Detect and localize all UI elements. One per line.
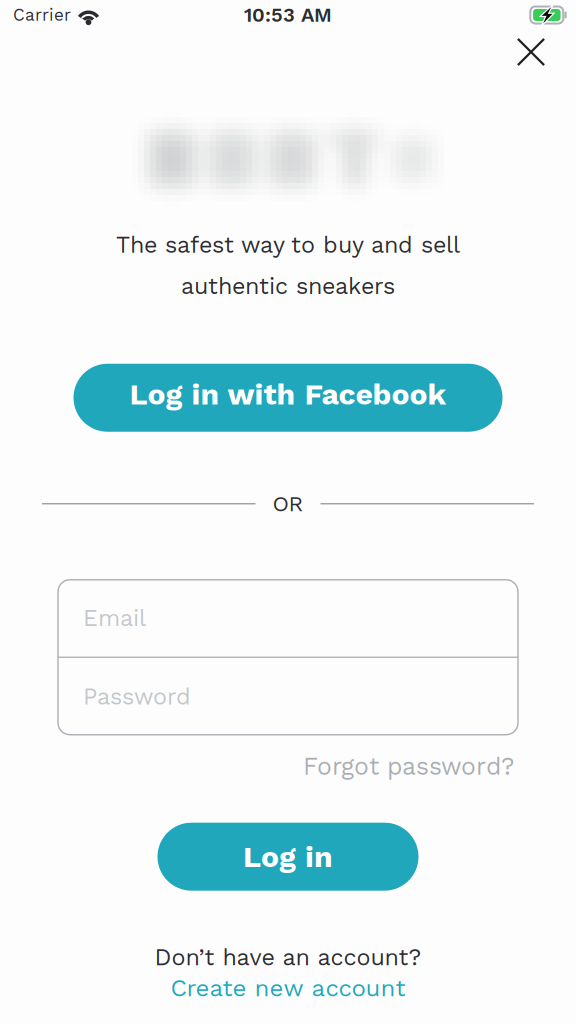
staticText: The safest way to buy and sell bbox=[116, 231, 460, 258]
staticText: Create new account bbox=[170, 974, 405, 1002]
button[interactable]: Email bbox=[58, 580, 518, 657]
staticText: Carrier bbox=[13, 5, 71, 25]
staticText: Don’t have an account? bbox=[154, 943, 421, 971]
button[interactable]: Password bbox=[58, 658, 518, 735]
staticText: 10:53 AM bbox=[244, 3, 332, 27]
staticText: Email bbox=[83, 604, 146, 632]
button[interactable]: Log in with Facebook bbox=[73, 364, 502, 432]
staticText: OR bbox=[272, 491, 303, 517]
staticText: authentic sneakers bbox=[181, 272, 395, 300]
button[interactable]: Close bbox=[504, 29, 558, 75]
button[interactable]: Create new account bbox=[170, 974, 405, 1002]
staticText: Log in bbox=[243, 839, 333, 874]
staticText: Password bbox=[83, 683, 191, 710]
button[interactable]: Log in bbox=[157, 823, 418, 891]
staticText: Log in with Facebook bbox=[129, 377, 446, 412]
staticText: Forgot password? bbox=[303, 752, 514, 781]
button[interactable]: Forgot password? bbox=[303, 747, 514, 786]
